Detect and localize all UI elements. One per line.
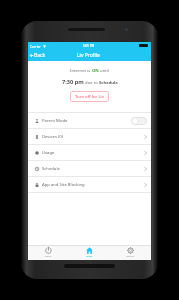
button[interactable]: Back	[28, 49, 49, 61]
staticText: Devices (0)	[42, 134, 63, 140]
button[interactable]: Home	[69, 245, 110, 260]
staticText: ON	[92, 68, 99, 74]
button[interactable]: Status	[28, 245, 69, 260]
staticText: App and Site Blocking	[42, 182, 85, 188]
staticText: Parent Mode	[42, 118, 68, 124]
button[interactable]: Parent Mode	[28, 113, 151, 128]
button[interactable]: Turn off for Liv	[70, 91, 109, 102]
button[interactable]: Devices (0)	[28, 129, 151, 144]
staticText: Status	[45, 255, 52, 258]
staticText: 7:30 pm	[62, 78, 84, 86]
staticText: Schedule	[99, 80, 118, 86]
button[interactable]: Settings	[110, 245, 151, 260]
staticText: Home	[86, 255, 93, 258]
button[interactable]: Usage	[28, 145, 151, 160]
staticText: Turn off for Liv	[75, 94, 104, 100]
button[interactable]: App and Site Blocking	[28, 177, 151, 192]
button[interactable]: Schedule	[28, 161, 151, 176]
staticText: until	[99, 68, 109, 74]
staticText: Back	[34, 52, 46, 59]
staticText: Usage	[42, 150, 55, 156]
staticText: Settings	[126, 255, 135, 258]
staticText: Schedule	[42, 166, 60, 172]
staticText: Liv Profile	[77, 52, 100, 59]
staticText: Internet is	[70, 68, 92, 74]
staticText: Carrier	[30, 44, 41, 48]
staticText: due to	[84, 80, 99, 86]
staticText: 5:05 PM	[83, 44, 95, 48]
